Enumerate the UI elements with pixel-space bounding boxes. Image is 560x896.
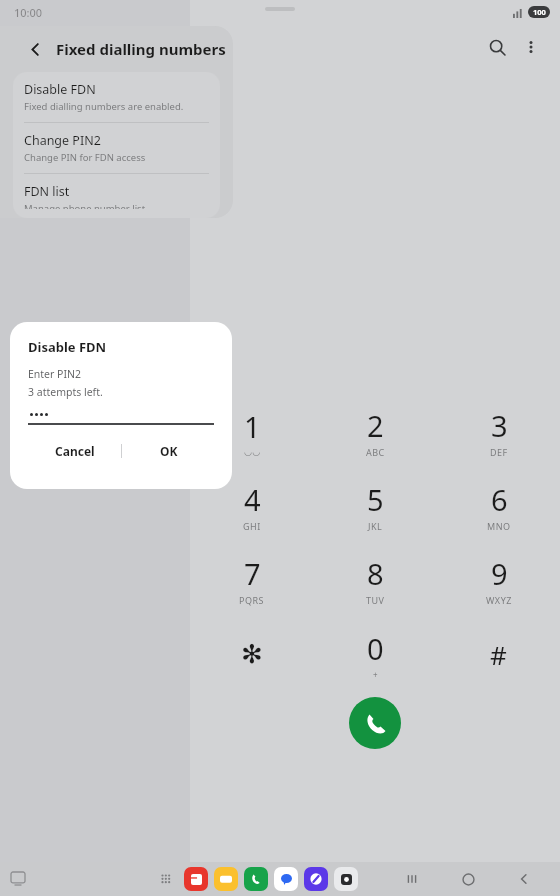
- button[interactable]: 2: [314, 395, 437, 469]
- button[interactable]: Recent apps: [394, 862, 430, 896]
- staticText: Disable FDN: [28, 338, 107, 356]
- staticText: WXYZ: [486, 594, 512, 606]
- staticText: 100: [533, 7, 546, 17]
- staticText: 9: [491, 554, 508, 593]
- staticText: Enter PIN2: [28, 367, 82, 381]
- staticText: JKL: [368, 520, 383, 532]
- staticText: #: [490, 637, 507, 672]
- button[interactable]: Back: [22, 36, 48, 62]
- button[interactable]: Change PIN2: [13, 123, 220, 174]
- staticText: Manage phone number list: [24, 202, 146, 209]
- staticText: Change PIN for FDN access: [24, 151, 146, 164]
- staticText: 5: [367, 480, 384, 519]
- button[interactable]: All apps: [155, 868, 177, 890]
- staticText: 2: [367, 406, 384, 445]
- button[interactable]: Cancel: [28, 434, 121, 468]
- button[interactable]: FDN list: [13, 174, 220, 218]
- button[interactable]: 9: [437, 543, 560, 617]
- button[interactable]: 1: [190, 395, 314, 469]
- button[interactable]: App: [214, 867, 238, 891]
- staticText: PQRS: [239, 594, 265, 606]
- button[interactable]: 0: [314, 617, 437, 691]
- staticText: GHI: [243, 520, 261, 532]
- staticText: Change PIN2: [24, 132, 101, 149]
- staticText: Disable FDN: [24, 81, 96, 98]
- button[interactable]: 3: [437, 395, 560, 469]
- staticText: 0: [367, 629, 384, 668]
- button[interactable]: 7: [190, 543, 314, 617]
- staticText: 8: [367, 554, 384, 593]
- staticText: DEF: [490, 446, 508, 458]
- staticText: Cancel: [55, 443, 95, 459]
- staticText: 4: [244, 480, 261, 519]
- staticText: 3: [491, 406, 508, 445]
- button[interactable]: ✻: [190, 617, 314, 691]
- button[interactable]: App: [244, 867, 268, 891]
- staticText: 6: [491, 480, 508, 519]
- button[interactable]: App: [334, 867, 358, 891]
- button[interactable]: Call: [349, 697, 401, 749]
- staticText: 7: [244, 554, 261, 593]
- button[interactable]: App: [274, 867, 298, 891]
- staticText: FDN list: [24, 183, 70, 200]
- staticText: ✻: [241, 639, 263, 669]
- button[interactable]: OK: [122, 434, 216, 468]
- button[interactable]: Disable FDN: [13, 72, 220, 123]
- button[interactable]: 4: [190, 469, 314, 543]
- button[interactable]: Back: [506, 862, 542, 896]
- staticText: 1: [244, 407, 261, 446]
- staticText: Fixed dialling numbers are enabled.: [24, 100, 184, 113]
- button[interactable]: More options: [514, 30, 548, 64]
- staticText: ABC: [366, 446, 385, 458]
- staticText: Fixed dialling numbers: [56, 39, 226, 59]
- button[interactable]: Recents panel: [5, 866, 31, 892]
- button[interactable]: #: [437, 617, 560, 691]
- staticText: MNO: [487, 520, 511, 532]
- button[interactable]: Home: [450, 862, 486, 896]
- button[interactable]: 8: [314, 543, 437, 617]
- staticText: ◡◡: [244, 447, 261, 457]
- staticText: +: [373, 669, 379, 680]
- button[interactable]: Search: [480, 30, 514, 64]
- staticText: 3 attempts left.: [28, 385, 103, 399]
- staticText: 10:00: [14, 5, 43, 20]
- staticText: TUV: [366, 594, 385, 606]
- staticText: OK: [160, 443, 178, 459]
- button[interactable]: App: [184, 867, 208, 891]
- button[interactable]: App: [304, 867, 328, 891]
- button[interactable]: 5: [314, 469, 437, 543]
- button[interactable]: 6: [437, 469, 560, 543]
